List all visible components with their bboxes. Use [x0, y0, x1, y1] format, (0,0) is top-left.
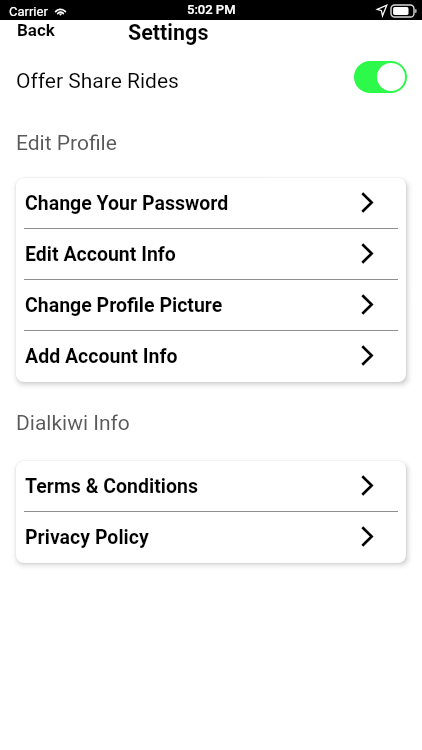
staticText: Change Profile Picture [25, 294, 223, 317]
staticText: 5:02 PM [187, 2, 236, 17]
button[interactable]: Edit Account Info [16, 229, 406, 280]
staticText: Privacy Policy [25, 526, 149, 549]
staticText: Change Your Password [25, 192, 229, 215]
button[interactable]: Change Your Password [16, 178, 406, 229]
button[interactable]: Privacy Policy [16, 512, 406, 563]
staticText: Offer Share Rides [16, 69, 179, 94]
staticText: Settings [128, 20, 209, 45]
button[interactable]: Offer Share Rides [0, 45, 422, 109]
button[interactable]: Change Profile Picture [16, 280, 406, 331]
staticText: Back [17, 20, 55, 40]
staticText: Carrier [9, 4, 48, 19]
button[interactable]: Add Account Info [16, 331, 406, 382]
staticText: Edit Profile [16, 131, 117, 156]
staticText: Dialkiwi Info [16, 411, 130, 436]
staticText: Add Account Info [25, 345, 178, 368]
staticText: Edit Account Info [25, 243, 176, 266]
button[interactable]: Terms & Conditions [16, 461, 406, 512]
staticText: Terms & Conditions [25, 475, 198, 498]
button[interactable]: Back [15, 17, 57, 43]
button[interactable]: Offer Share Rides toggle [354, 61, 407, 93]
